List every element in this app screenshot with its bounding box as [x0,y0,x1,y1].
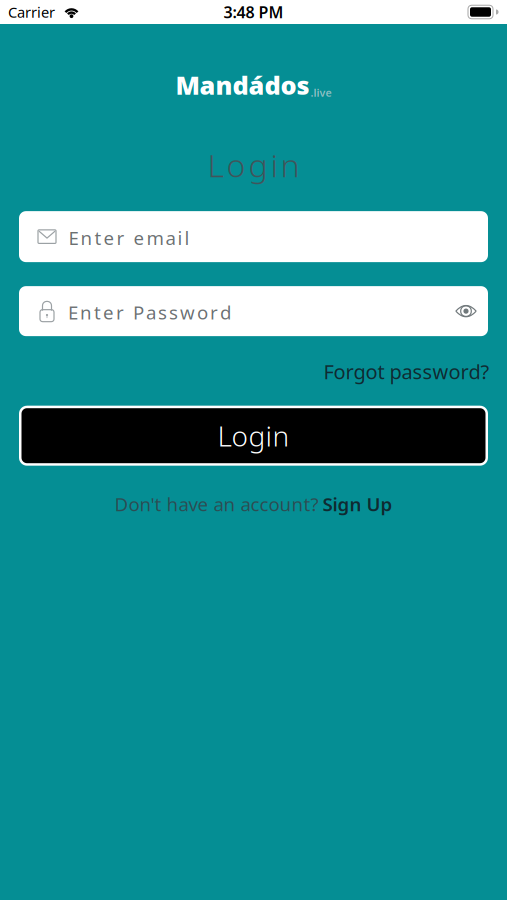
staticText: Carrier [8,2,55,22]
staticText: E n t e r P a s s w o r d [68,300,231,324]
button[interactable]: Login [19,406,488,466]
button[interactable]: Show password [455,304,488,318]
staticText: .live [310,85,331,100]
staticText: Don't have an account? [114,492,318,516]
staticText: Sign Up [322,492,392,516]
staticText: Forgot password? [323,358,489,385]
button[interactable]: E n t e r e m a i l [19,211,488,262]
staticText: Login [217,417,289,454]
button[interactable]: Don't have an account? [114,492,392,516]
button[interactable]: E n t e r P a s s w o r d [19,286,488,336]
staticText: E n t e r e m a i l [68,225,189,250]
staticText: 3:48 PM [223,1,283,23]
staticText: L o g i n [207,144,299,186]
button[interactable]: Forgot password? [323,358,489,385]
staticText: Mandádos [175,68,309,102]
